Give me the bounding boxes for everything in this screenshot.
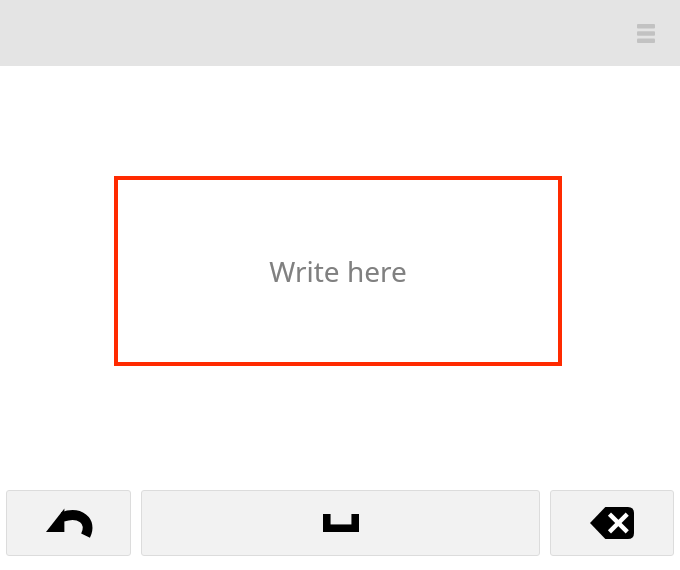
button[interactable]: Undo (6, 490, 131, 556)
staticText: Write here (269, 252, 407, 290)
button[interactable]: Backspace (550, 490, 674, 556)
button[interactable]: Menu (624, 11, 668, 55)
button[interactable]: Space (141, 490, 540, 556)
button[interactable]: Write here (114, 176, 562, 366)
